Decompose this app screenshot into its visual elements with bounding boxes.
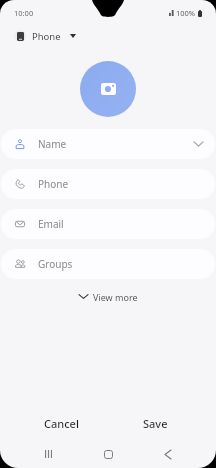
staticText: View more bbox=[93, 291, 138, 301]
button[interactable]: Save bbox=[108, 408, 202, 438]
button[interactable]: Phone bbox=[0, 22, 216, 50]
button[interactable]: Groups bbox=[1, 249, 215, 279]
button[interactable]: Phone bbox=[1, 169, 215, 199]
button[interactable]: Home bbox=[78, 442, 138, 466]
staticText: Name bbox=[38, 137, 67, 151]
staticText: 10:00 bbox=[14, 8, 34, 18]
button[interactable]: Name bbox=[1, 129, 215, 159]
button[interactable]: Back bbox=[138, 442, 198, 466]
button[interactable]: Email bbox=[1, 209, 215, 239]
staticText: Cancel bbox=[44, 416, 79, 431]
button[interactable]: Add photo bbox=[80, 61, 136, 117]
staticText: Groups bbox=[38, 257, 73, 271]
staticText: Save bbox=[143, 416, 168, 431]
staticText: 100% bbox=[176, 8, 196, 18]
staticText: Email bbox=[38, 217, 64, 231]
button[interactable]: Cancel bbox=[14, 408, 108, 438]
button[interactable]: Recents bbox=[18, 442, 78, 466]
staticText: Phone bbox=[32, 30, 61, 43]
staticText: Phone bbox=[38, 177, 69, 191]
button[interactable]: View more bbox=[73, 288, 144, 304]
